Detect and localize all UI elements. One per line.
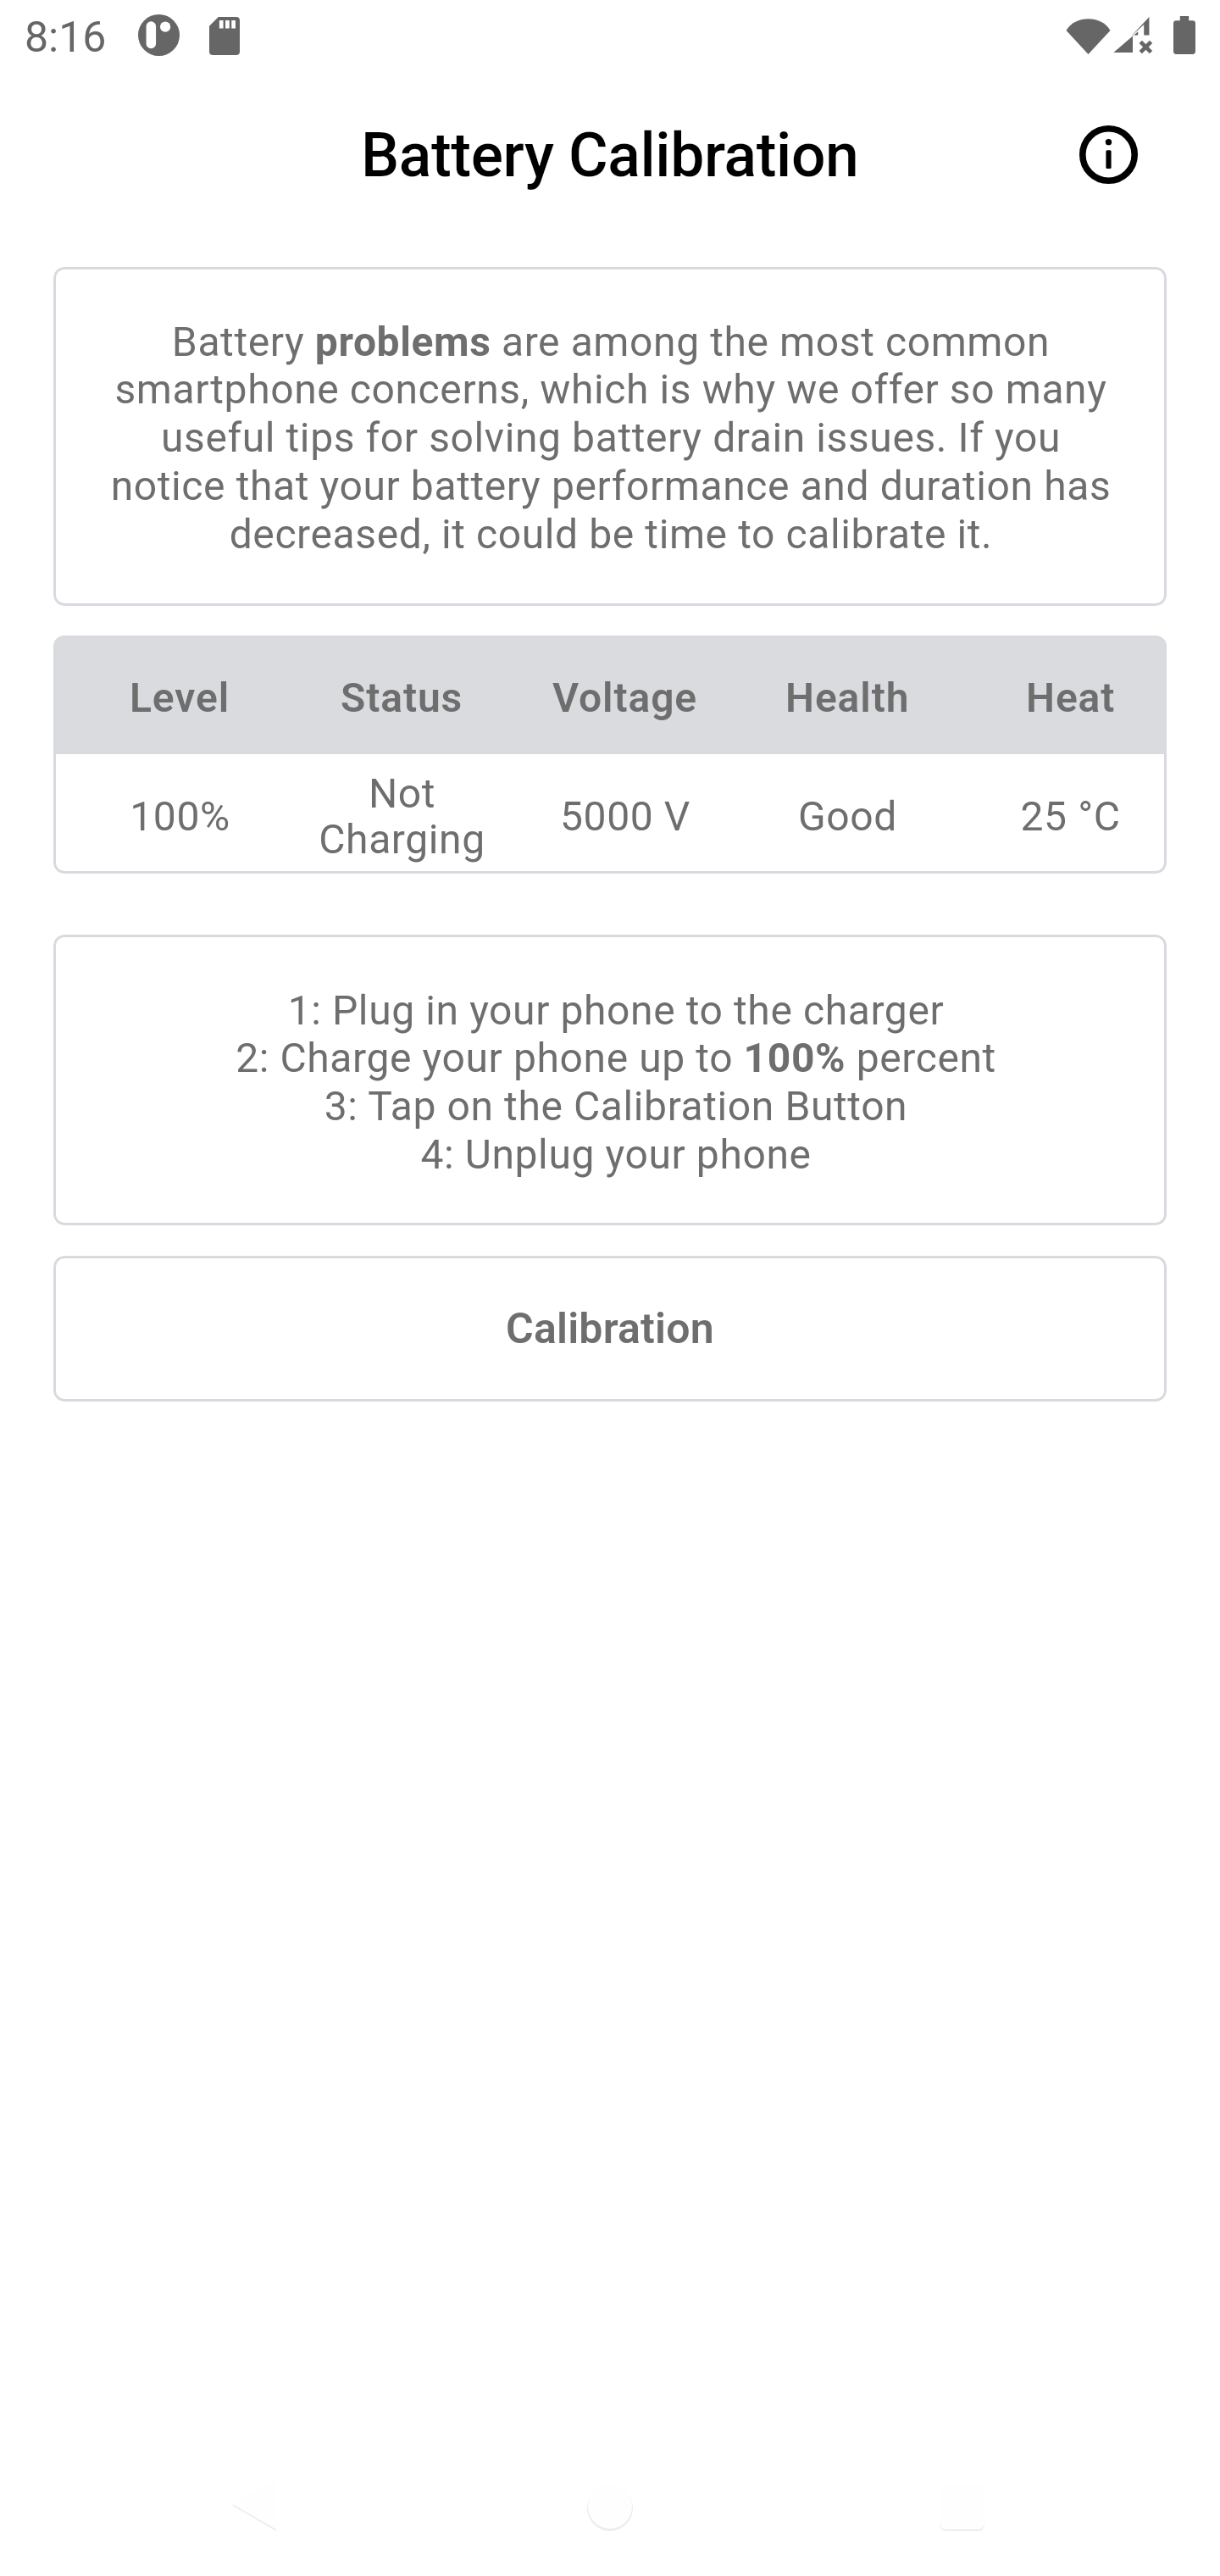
button[interactable]: Info	[1067, 114, 1149, 195]
staticText: Battery problems are among the most comm…	[98, 318, 1123, 558]
staticText: Calibration	[506, 1304, 714, 1354]
staticText: Battery Calibration	[361, 120, 859, 192]
staticText: Health	[785, 674, 910, 721]
staticText: 100%	[130, 792, 230, 840]
staticText: Not Charging	[291, 769, 513, 863]
staticText: 25 °C	[1020, 792, 1121, 840]
staticText: Good	[798, 792, 897, 840]
staticText: 5000 V	[560, 792, 690, 840]
staticText: Level	[130, 674, 230, 721]
staticText: 8:16	[25, 13, 107, 63]
staticText: Status	[341, 674, 463, 721]
staticText: Voltage	[552, 674, 698, 721]
button[interactable]: Calibration	[53, 1256, 1167, 1402]
staticText: Heat	[1026, 674, 1116, 721]
staticText: 1: Plug in your phone to the charger 2: …	[236, 986, 996, 1179]
